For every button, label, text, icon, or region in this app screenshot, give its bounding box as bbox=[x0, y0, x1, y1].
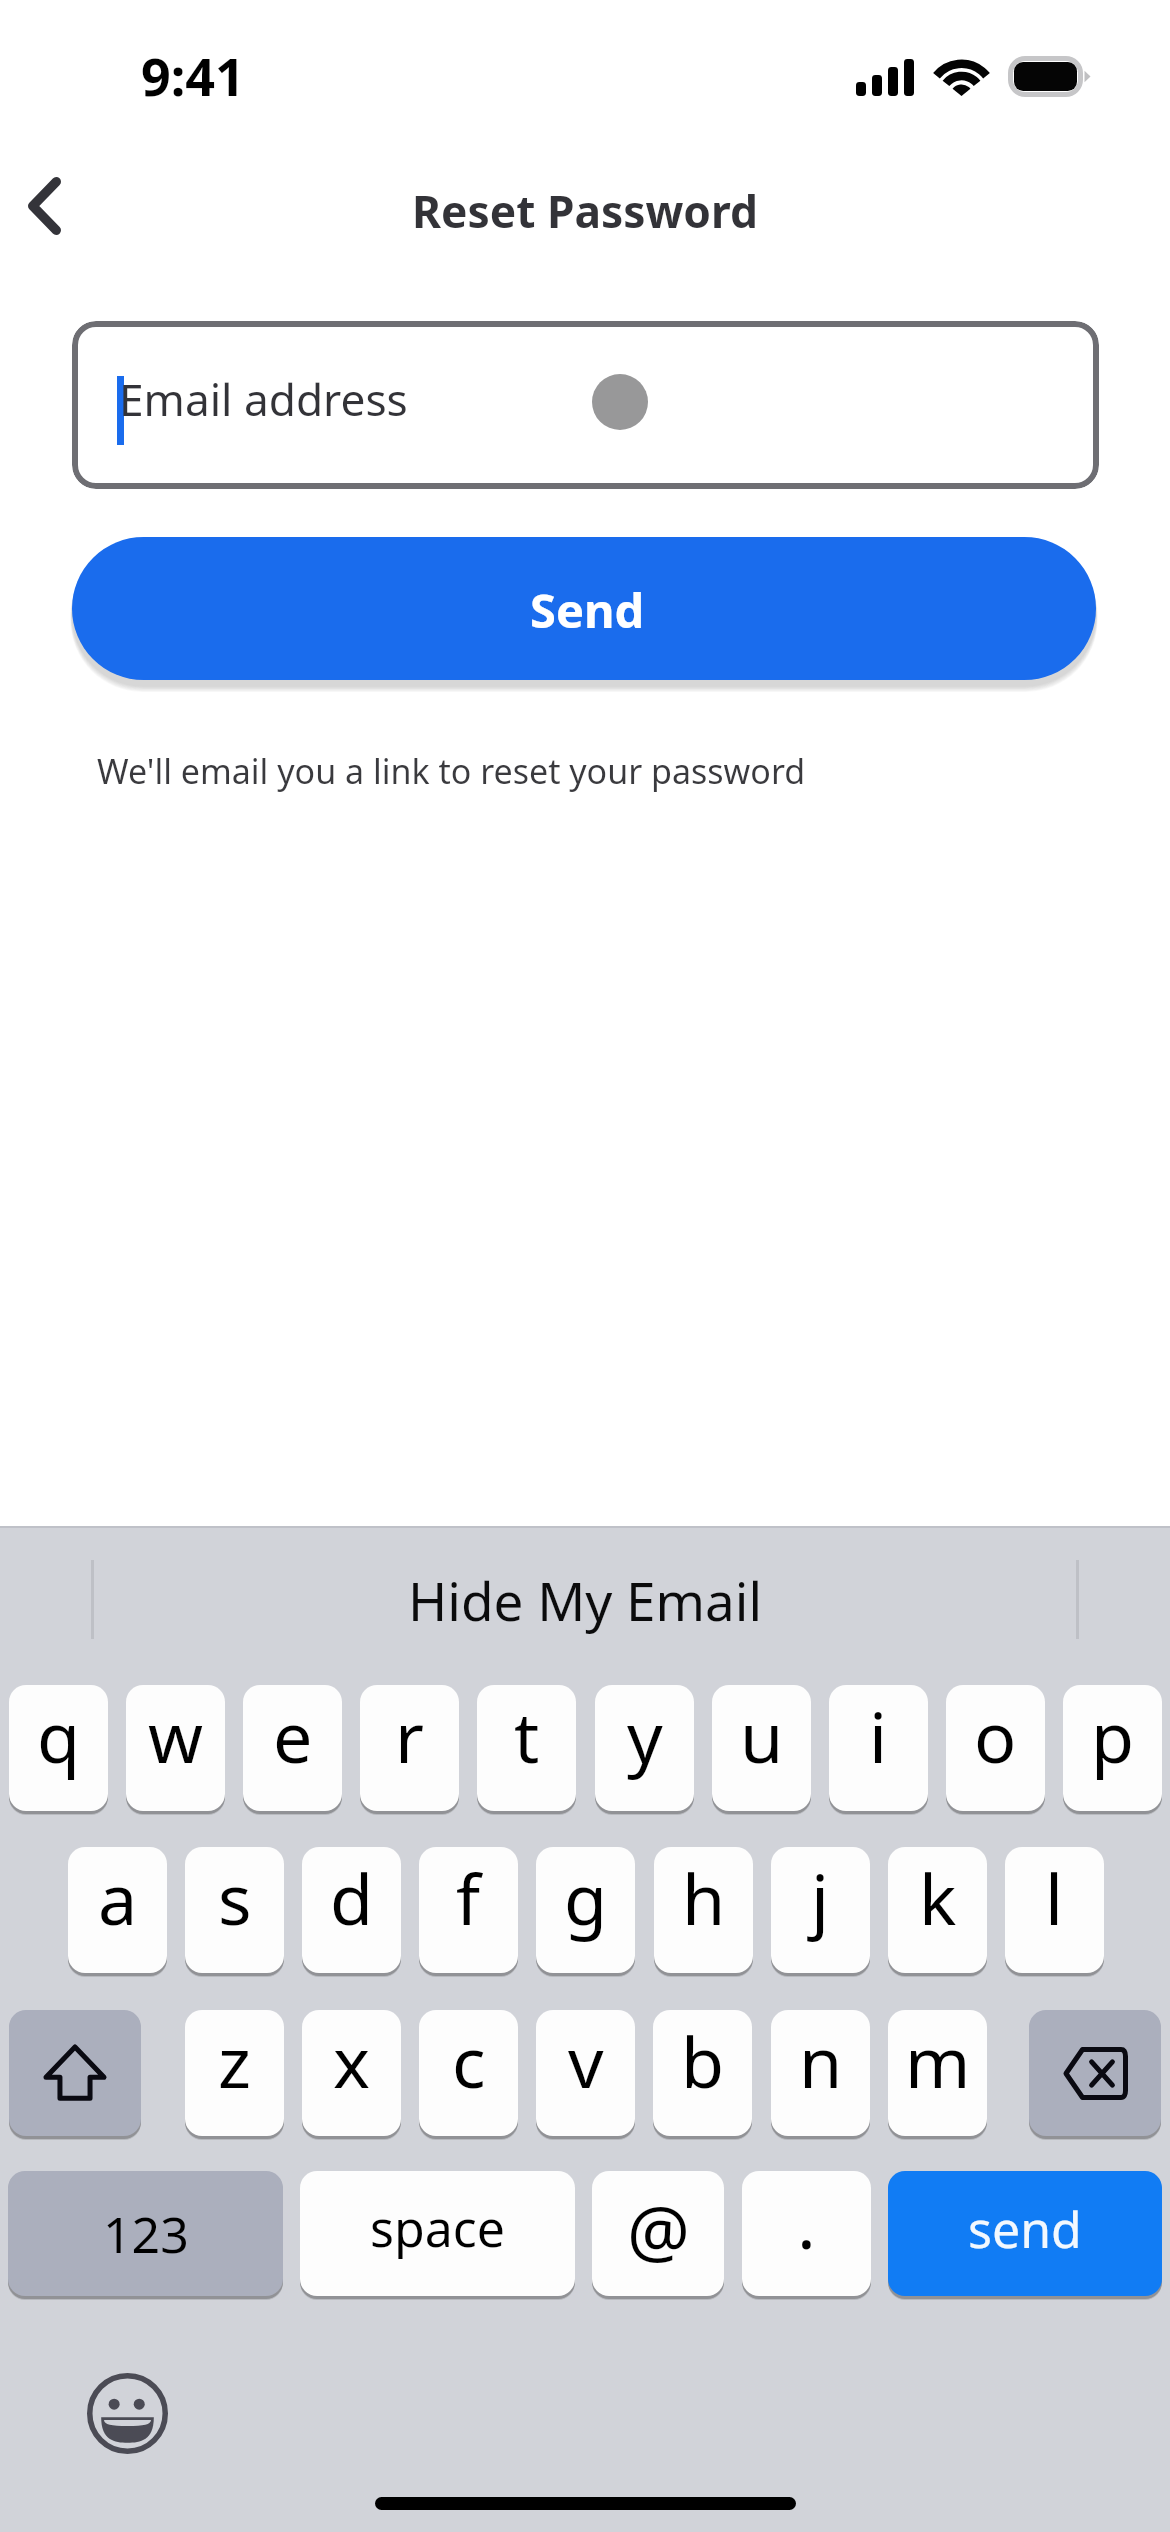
button[interactable]: 123 bbox=[8, 2171, 283, 2296]
button[interactable]: l bbox=[1005, 1847, 1104, 1973]
button[interactable]: m bbox=[888, 2010, 987, 2136]
staticText: a bbox=[98, 1850, 138, 1945]
staticText: Hide My Email bbox=[408, 1564, 763, 1636]
button[interactable]: o bbox=[946, 1685, 1045, 1811]
button[interactable]: @ bbox=[592, 2171, 724, 2296]
button[interactable]: e bbox=[243, 1685, 342, 1811]
button[interactable]: j bbox=[771, 1847, 870, 1973]
staticText: i bbox=[869, 1688, 888, 1783]
staticText: u bbox=[740, 1688, 784, 1783]
staticText: 9:41 bbox=[141, 40, 245, 111]
button[interactable]: r bbox=[360, 1685, 459, 1811]
staticText: We'll email you a link to reset your pas… bbox=[97, 748, 806, 794]
staticText: @ bbox=[627, 2182, 690, 2277]
staticText: Reset Password bbox=[412, 181, 758, 241]
button[interactable]: Backspace bbox=[1029, 2010, 1161, 2136]
button[interactable]: Email address bbox=[72, 321, 1099, 489]
staticText: t bbox=[514, 1688, 540, 1783]
staticText: g bbox=[564, 1850, 608, 1945]
button[interactable]: space bbox=[300, 2171, 575, 2296]
button[interactable]: d bbox=[302, 1847, 401, 1973]
staticText: l bbox=[1045, 1850, 1064, 1945]
staticText: v bbox=[568, 2013, 604, 2108]
button[interactable]: k bbox=[888, 1847, 987, 1973]
button[interactable]: Emoji keyboard bbox=[87, 2373, 168, 2454]
button[interactable]: c bbox=[419, 2010, 518, 2136]
button[interactable]: p bbox=[1063, 1685, 1162, 1811]
staticText: f bbox=[456, 1850, 481, 1945]
staticText: r bbox=[395, 1688, 424, 1783]
button[interactable]: w bbox=[126, 1685, 225, 1811]
button[interactable]: . bbox=[742, 2171, 871, 2296]
staticText: w bbox=[148, 1688, 204, 1783]
staticText: j bbox=[811, 1850, 830, 1945]
button[interactable]: s bbox=[185, 1847, 284, 1973]
button[interactable]: u bbox=[712, 1685, 811, 1811]
button[interactable]: v bbox=[536, 2010, 635, 2136]
staticText: b bbox=[681, 2013, 725, 2108]
staticText: n bbox=[799, 2013, 843, 2108]
button[interactable]: q bbox=[9, 1685, 108, 1811]
button[interactable]: z bbox=[185, 2010, 284, 2136]
staticText: space bbox=[370, 2194, 505, 2262]
staticText: c bbox=[452, 2013, 486, 2108]
button[interactable]: x bbox=[302, 2010, 401, 2136]
staticText: y bbox=[627, 1688, 663, 1783]
staticText: h bbox=[682, 1850, 726, 1945]
staticText: q bbox=[37, 1688, 81, 1783]
button[interactable]: Back bbox=[0, 151, 99, 261]
button[interactable]: send bbox=[888, 2171, 1162, 2296]
button[interactable]: y bbox=[595, 1685, 694, 1811]
button[interactable]: f bbox=[419, 1847, 518, 1973]
staticText: 123 bbox=[103, 2200, 189, 2268]
button[interactable]: Shift bbox=[9, 2010, 141, 2136]
button[interactable]: t bbox=[477, 1685, 576, 1811]
staticText: Email address bbox=[119, 369, 408, 429]
staticText: m bbox=[905, 2013, 971, 2108]
staticText: d bbox=[330, 1850, 374, 1945]
button[interactable]: Send bbox=[72, 537, 1096, 680]
staticText: . bbox=[797, 2174, 816, 2269]
button[interactable]: b bbox=[653, 2010, 752, 2136]
staticText: x bbox=[333, 2013, 371, 2108]
button[interactable]: a bbox=[68, 1847, 167, 1973]
staticText: send bbox=[968, 2195, 1082, 2263]
staticText: e bbox=[273, 1688, 313, 1783]
button[interactable]: n bbox=[771, 2010, 870, 2136]
button[interactable]: i bbox=[829, 1685, 928, 1811]
staticText: z bbox=[218, 2013, 251, 2108]
button[interactable]: h bbox=[654, 1847, 753, 1973]
staticText: k bbox=[919, 1850, 957, 1945]
staticText: s bbox=[218, 1850, 252, 1945]
staticText: o bbox=[974, 1688, 1017, 1783]
staticText: Send bbox=[530, 578, 645, 642]
button[interactable]: g bbox=[536, 1847, 635, 1973]
staticText: p bbox=[1091, 1688, 1135, 1783]
